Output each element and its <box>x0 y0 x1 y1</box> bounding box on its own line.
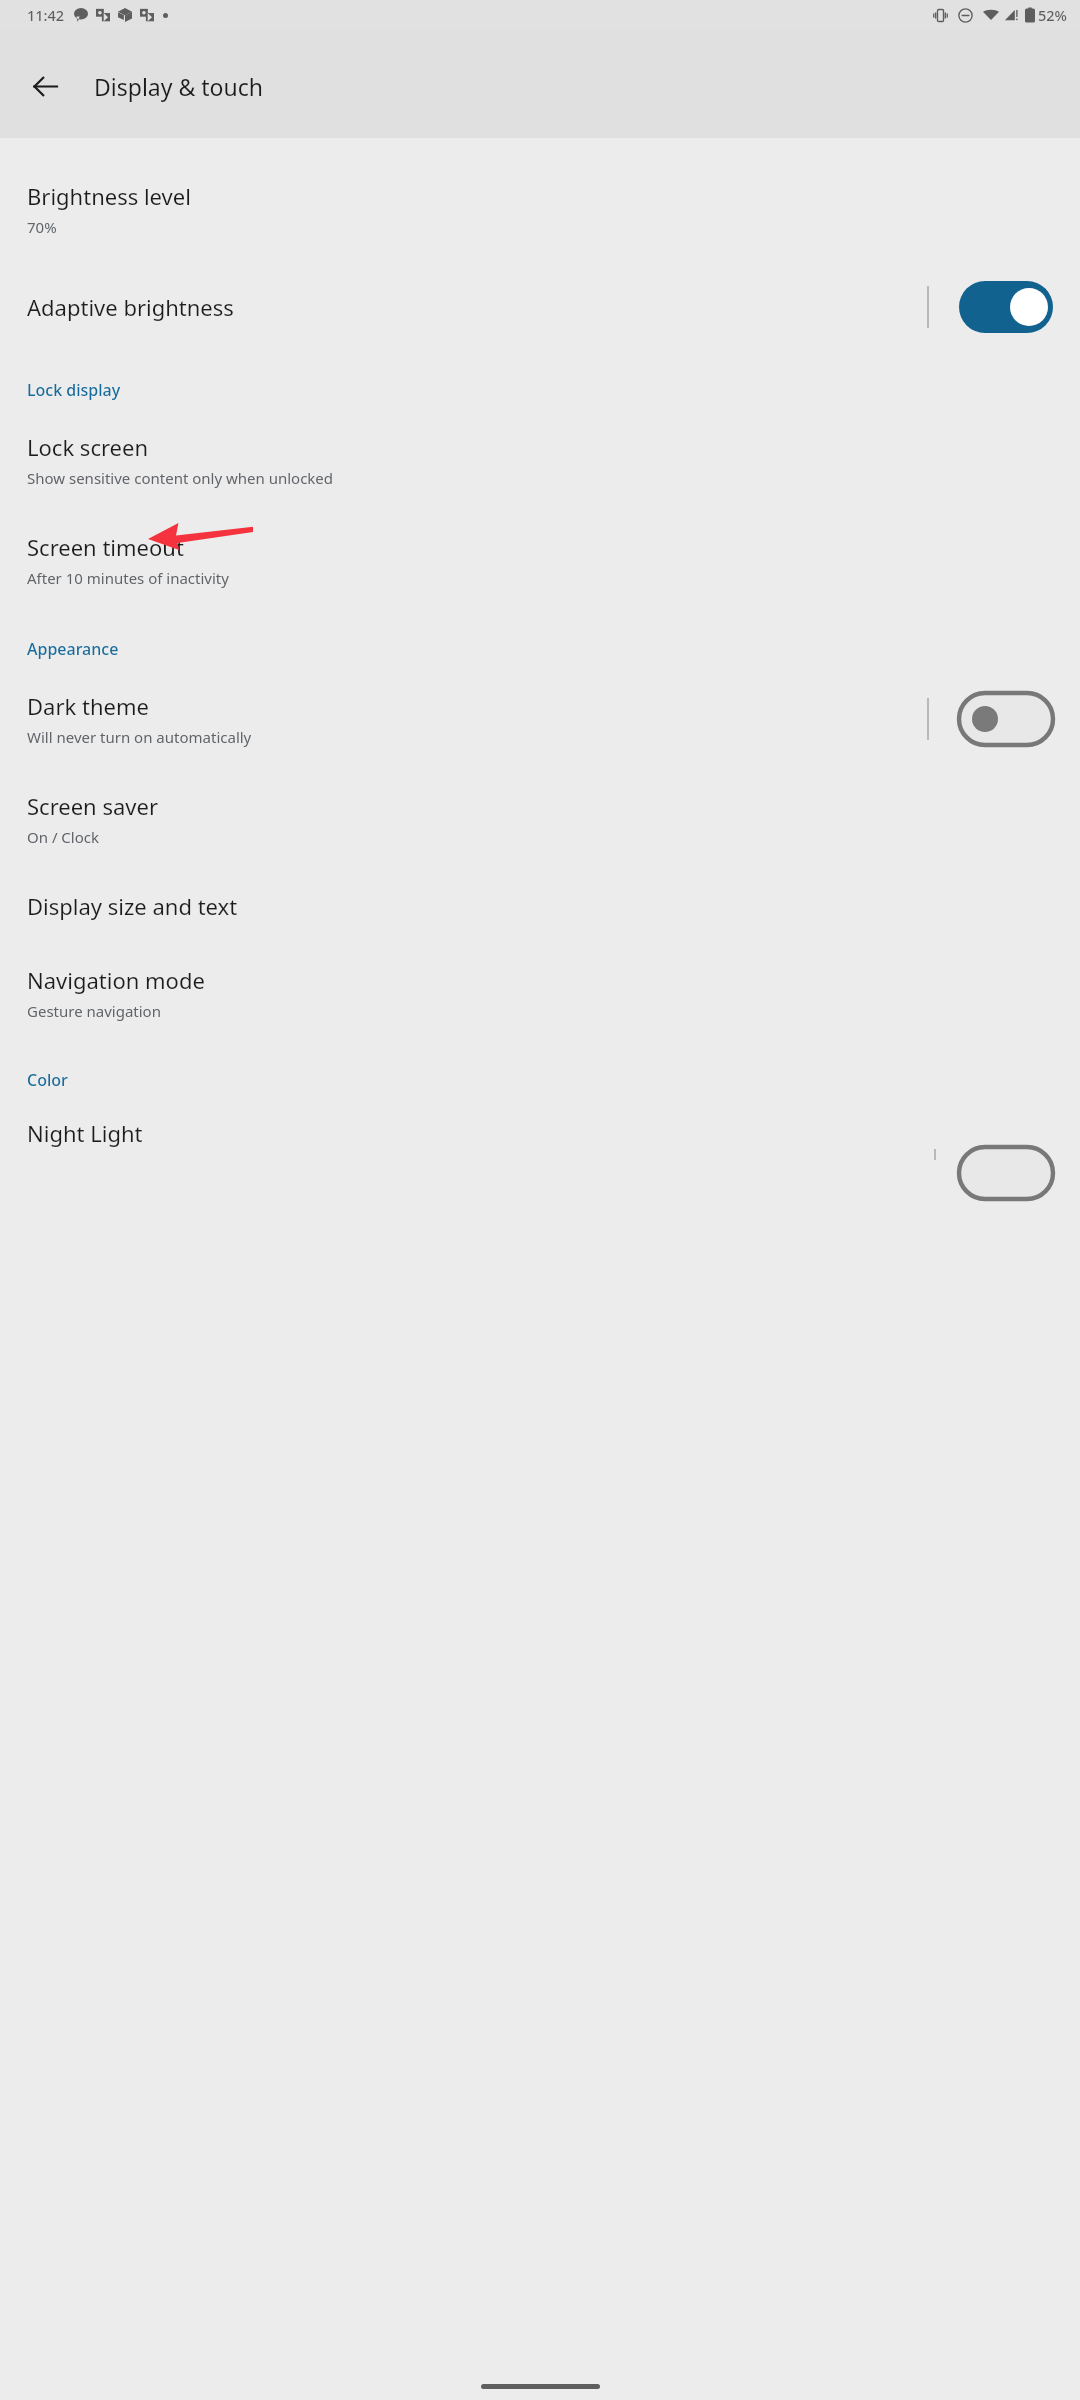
staticText: Dark theme <box>27 691 149 721</box>
staticText: Appearance <box>27 638 119 660</box>
staticText: Display size and text <box>27 891 238 921</box>
staticText: On / Clock <box>27 827 100 847</box>
button[interactable]: Brightness level <box>0 159 1080 259</box>
button[interactable]: Back <box>17 58 73 114</box>
staticText: Night Light <box>27 1118 143 1148</box>
button[interactable]: Lock screen <box>0 410 1080 510</box>
staticText: Lock screen <box>27 432 149 462</box>
staticText: Brightness level <box>27 181 191 211</box>
staticText: Navigation mode <box>27 965 205 995</box>
staticText: 11:42 <box>27 5 65 25</box>
staticText: Color <box>27 1069 68 1091</box>
staticText: Show sensitive content only when unlocke… <box>27 468 334 488</box>
staticText: Adaptive brightness <box>27 292 234 322</box>
staticText: 52% <box>1038 5 1067 25</box>
button[interactable]: Toggle off <box>959 693 1053 745</box>
button[interactable]: Display size and text <box>0 869 1080 943</box>
staticText: Display & touch <box>94 71 263 102</box>
staticText: After 10 minutes of inactivity <box>27 568 229 588</box>
staticText: Lock display <box>27 379 121 401</box>
staticText: Will never turn on automatically <box>27 727 252 747</box>
button[interactable]: Screen saver <box>0 769 1080 869</box>
button[interactable]: Navigation mode <box>0 943 1080 1043</box>
staticText: Screen saver <box>27 791 158 821</box>
button[interactable]: Adaptive brightness <box>0 259 1080 355</box>
button[interactable]: Toggle on <box>959 281 1053 333</box>
staticText: 70% <box>27 217 57 237</box>
button[interactable]: Dark theme <box>0 669 1080 769</box>
staticText: Screen timeout <box>27 532 184 562</box>
staticText: Gesture navigation <box>27 1001 161 1021</box>
button[interactable]: Screen timeout <box>0 510 1080 610</box>
